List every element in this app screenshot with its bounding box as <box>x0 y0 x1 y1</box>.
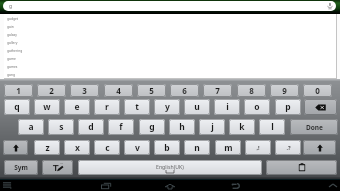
button[interactable]: game <box>4 54 336 62</box>
button[interactable]: r <box>94 99 120 115</box>
button[interactable]: 3 <box>70 84 99 97</box>
button[interactable]: Backspace <box>304 99 337 115</box>
staticText: 3 <box>82 85 87 96</box>
button[interactable]: gang <box>4 70 336 78</box>
button[interactable]: Handwriting <box>42 160 73 175</box>
button[interactable]: 8 <box>237 84 266 97</box>
staticText: y <box>165 101 170 113</box>
button[interactable]: t <box>124 99 150 115</box>
button[interactable]: z <box>34 140 60 155</box>
button[interactable]: Hide keyboard <box>327 182 338 189</box>
staticText: 5 <box>149 85 154 96</box>
button[interactable]: Menu <box>3 182 12 189</box>
button[interactable]: g <box>3 1 336 11</box>
button[interactable]: Space <box>78 160 262 175</box>
button[interactable]: l <box>259 119 285 135</box>
staticText: gang <box>7 72 15 76</box>
staticText: 7 <box>215 85 220 96</box>
button[interactable]: a <box>18 119 44 135</box>
button[interactable]: c <box>94 140 120 155</box>
button[interactable]: ,! <box>245 140 271 155</box>
button[interactable]: galaxy <box>4 30 336 38</box>
button[interactable]: Home <box>162 181 178 191</box>
button[interactable]: s <box>48 119 74 135</box>
staticText: gain <box>7 24 14 28</box>
button[interactable]: Voice search <box>326 2 334 10</box>
staticText: 6 <box>182 85 187 96</box>
staticText: g <box>9 3 13 10</box>
button[interactable]: d <box>78 119 104 135</box>
button[interactable]: Shift <box>303 140 336 155</box>
staticText: d <box>88 121 94 133</box>
staticText: l <box>271 121 274 133</box>
staticText: 4 <box>116 85 121 96</box>
button[interactable]: u <box>184 99 210 115</box>
button[interactable]: v <box>124 140 150 155</box>
button[interactable]: o <box>244 99 270 115</box>
button[interactable]: x <box>64 140 90 155</box>
button[interactable]: 9 <box>270 84 299 97</box>
staticText: games <box>7 64 18 68</box>
staticText: v <box>135 142 140 154</box>
staticText: Done <box>306 123 323 132</box>
button[interactable]: k <box>229 119 255 135</box>
staticText: b <box>164 142 170 154</box>
staticText: gathering <box>7 48 23 52</box>
button[interactable]: h <box>169 119 195 135</box>
staticText: w <box>43 101 51 113</box>
staticText: Sym <box>14 163 28 172</box>
button[interactable]: Sym <box>4 160 38 175</box>
button[interactable]: w <box>34 99 60 115</box>
button[interactable]: gadget <box>4 14 336 22</box>
staticText: k <box>239 121 245 133</box>
button[interactable]: b <box>154 140 180 155</box>
button[interactable]: gain <box>4 22 336 30</box>
staticText: g <box>149 121 155 133</box>
button[interactable]: Recents <box>98 181 114 191</box>
button[interactable]: 1 <box>4 84 33 97</box>
staticText: 0 <box>315 85 320 96</box>
staticText: j <box>211 121 214 133</box>
staticText: c <box>105 142 110 154</box>
button[interactable]: 2 <box>37 84 66 97</box>
button[interactable]: f <box>108 119 134 135</box>
button[interactable]: 0 <box>303 84 332 97</box>
button[interactable]: Clipboard <box>266 160 337 175</box>
button[interactable]: j <box>199 119 225 135</box>
button[interactable]: i <box>214 99 240 115</box>
button[interactable]: 6 <box>170 84 199 97</box>
staticText: gadget <box>7 16 18 20</box>
button[interactable]: n <box>184 140 210 155</box>
button[interactable]: Back <box>227 181 243 191</box>
staticText: t <box>135 101 139 113</box>
staticText: i <box>226 101 229 113</box>
button[interactable]: Done <box>290 119 338 135</box>
button[interactable]: games <box>4 62 336 70</box>
staticText: gallery <box>7 40 18 44</box>
button[interactable]: Shift <box>3 140 28 155</box>
button[interactable]: p <box>275 99 301 115</box>
staticText: English(UK) <box>156 163 184 170</box>
staticText: p <box>285 101 291 113</box>
button[interactable]: q <box>4 99 30 115</box>
staticText: f <box>119 121 123 133</box>
button[interactable]: e <box>64 99 90 115</box>
staticText: u <box>194 101 200 113</box>
button[interactable]: g <box>139 119 165 135</box>
staticText: galaxy <box>7 32 18 36</box>
staticText: .? <box>286 144 291 151</box>
staticText: z <box>45 142 50 154</box>
staticText: r <box>105 101 109 113</box>
button[interactable]: gathering <box>4 46 336 54</box>
button[interactable]: .? <box>275 140 301 155</box>
button[interactable]: 5 <box>137 84 166 97</box>
staticText: q <box>14 101 20 113</box>
button[interactable]: 4 <box>104 84 133 97</box>
staticText: x <box>75 142 80 154</box>
staticText: a <box>28 121 34 133</box>
staticText: n <box>194 142 200 154</box>
button[interactable]: m <box>215 140 241 155</box>
button[interactable]: y <box>154 99 180 115</box>
button[interactable]: 7 <box>203 84 232 97</box>
button[interactable]: gallery <box>4 38 336 46</box>
